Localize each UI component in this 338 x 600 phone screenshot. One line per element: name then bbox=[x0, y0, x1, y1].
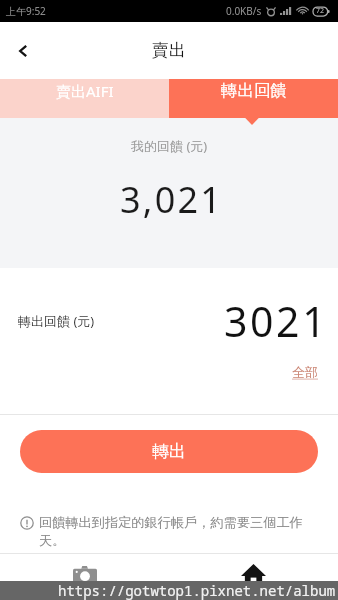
staticText: 3,021 bbox=[120, 175, 224, 224]
button[interactable]: Home bbox=[169, 554, 338, 600]
staticText: 轉出 bbox=[152, 441, 186, 462]
staticText: 72 bbox=[316, 6, 325, 16]
staticText: 我的回饋 (元) bbox=[131, 137, 208, 155]
staticText: 回饋轉出到指定的銀行帳戶，約需要三個工作天。 bbox=[39, 514, 320, 549]
staticText: 轉出回饋 (元) bbox=[18, 312, 95, 330]
staticText: 0.0KB/s bbox=[226, 4, 262, 18]
staticText: 賣出AIFI bbox=[56, 81, 114, 101]
staticText: https://gotwtop1.pixnet.net/album bbox=[58, 581, 336, 600]
button[interactable]: Camera bbox=[0, 554, 169, 600]
staticText: 上午9:52 bbox=[6, 4, 46, 18]
button[interactable]: 全部 bbox=[292, 364, 318, 380]
staticText: 轉出回饋 bbox=[221, 80, 287, 101]
staticText: 賣出 bbox=[152, 40, 186, 61]
staticText: 3021 bbox=[224, 293, 329, 349]
button[interactable]: 轉出回饋 bbox=[169, 79, 338, 118]
button[interactable]: 轉出 bbox=[20, 430, 318, 473]
button[interactable]: 賣出AIFI bbox=[0, 79, 169, 118]
button[interactable]: Back bbox=[5, 33, 41, 69]
